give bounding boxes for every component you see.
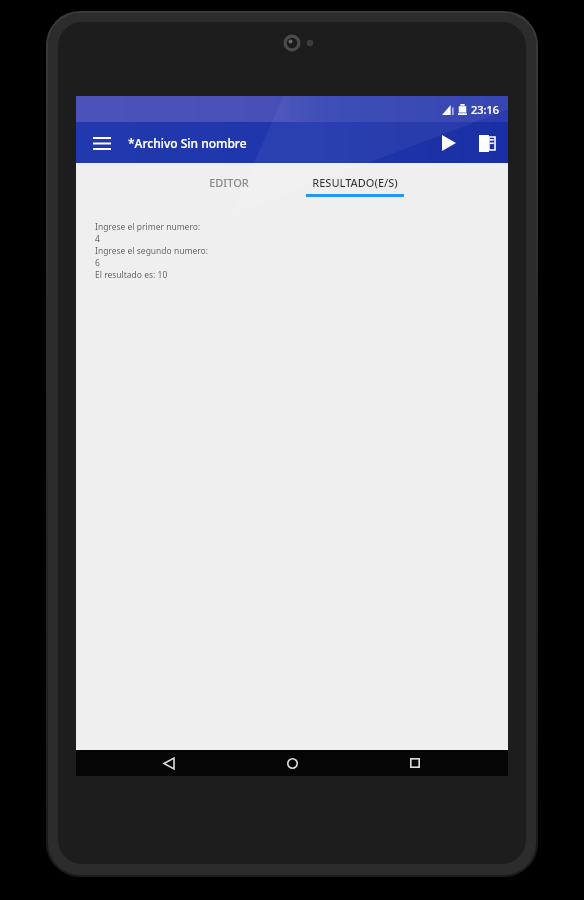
button[interactable]: Save file [470, 124, 504, 162]
button[interactable]: Home [262, 750, 322, 776]
staticText: 23:16 [471, 102, 500, 117]
staticText: Ingrese el segundo numero: [95, 245, 208, 257]
button[interactable]: EDITOR [166, 163, 292, 202]
staticText: RESULTADO(E/S) [312, 175, 398, 190]
staticText: *Archivo Sin nombre [128, 135, 247, 151]
staticText: 6 [95, 257, 100, 269]
button[interactable]: Open navigation menu [84, 125, 120, 161]
staticText: 4 [95, 233, 100, 245]
button[interactable]: Recent apps [385, 750, 445, 776]
staticText: EDITOR [209, 175, 249, 190]
staticText: Ingrese el primer numero: [95, 221, 201, 233]
button[interactable]: Back [139, 750, 199, 776]
staticText: El resultado es: 10 [95, 269, 168, 281]
button[interactable]: Run [430, 124, 468, 162]
button[interactable]: RESULTADO(E/S) [292, 163, 418, 202]
